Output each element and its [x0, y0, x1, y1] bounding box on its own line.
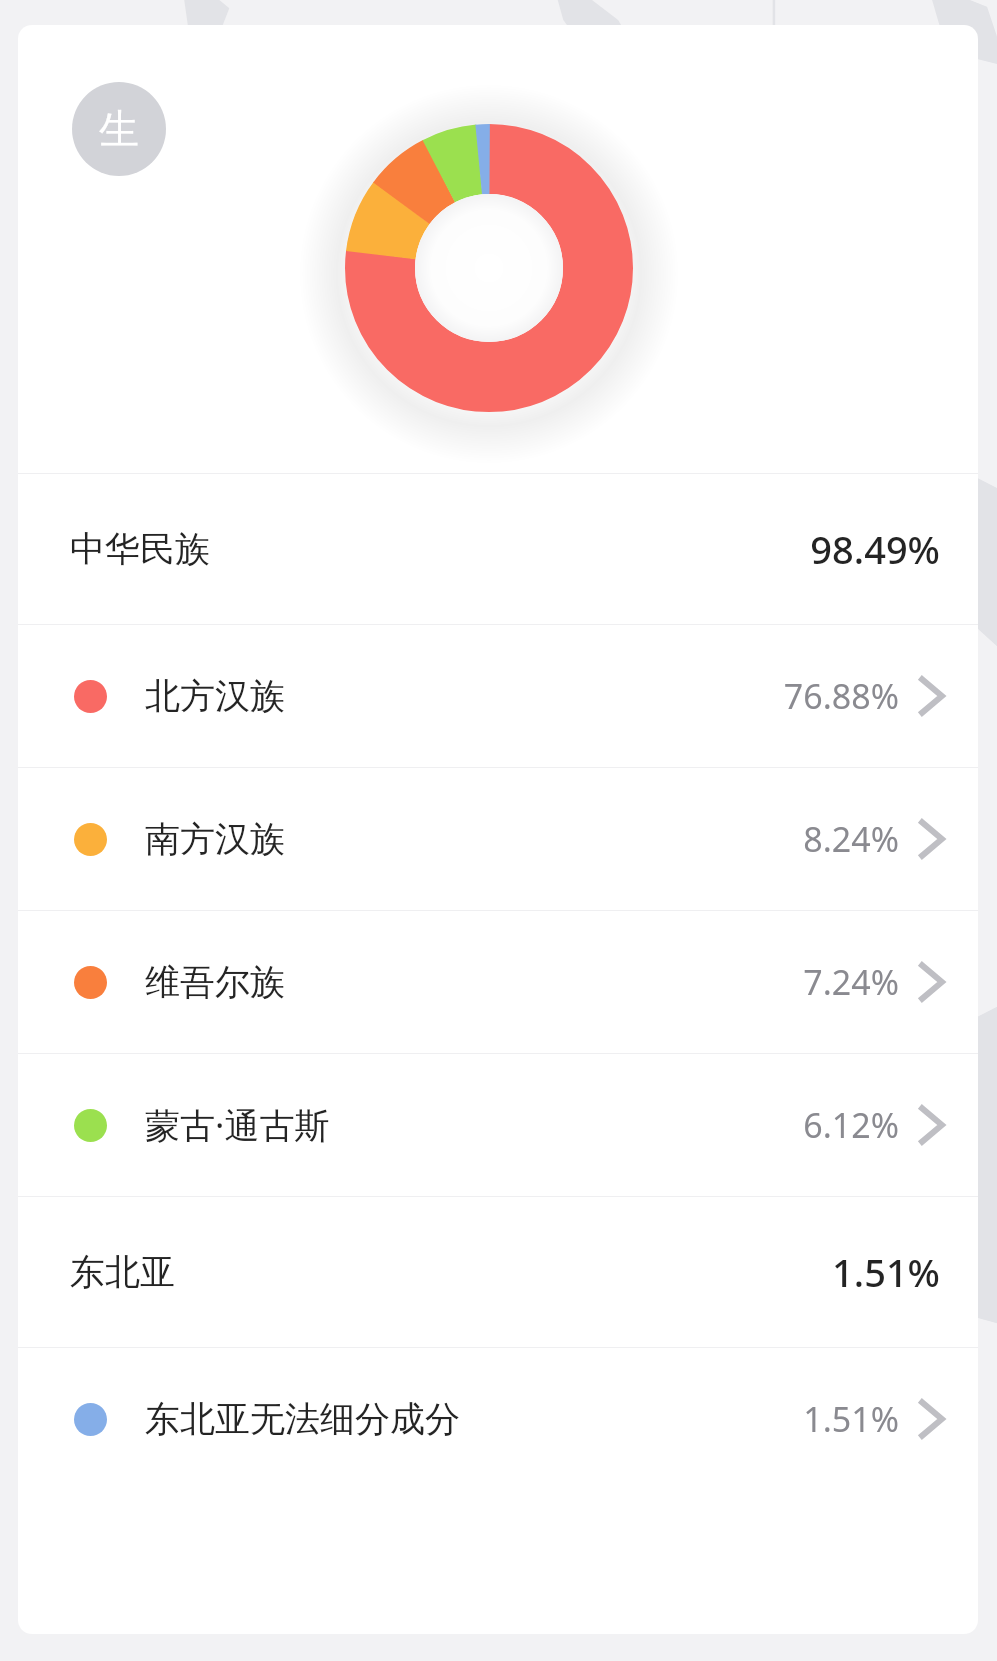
staticText: 6.12%	[803, 1102, 899, 1148]
staticText: 8.24%	[803, 816, 899, 862]
staticText: 7.24%	[803, 959, 899, 1005]
button[interactable]: 蒙古·通古斯	[18, 1054, 978, 1196]
staticText: 蒙古·通古斯	[145, 1101, 330, 1149]
button[interactable]: 中华民族	[18, 474, 978, 624]
button[interactable]: 东北亚无法细分成分	[18, 1348, 978, 1490]
staticText: 76.88%	[783, 673, 899, 719]
button[interactable]: 北方汉族	[18, 625, 978, 767]
staticText: 东北亚无法细分成分	[145, 1397, 460, 1441]
staticText: 东北亚	[70, 1250, 175, 1294]
staticText: 北方汉族	[145, 674, 285, 718]
button[interactable]: 南方汉族	[18, 768, 978, 910]
button[interactable]: 维吾尔族	[18, 911, 978, 1053]
staticText: 98.49%	[810, 523, 940, 575]
button[interactable]: 东北亚	[18, 1197, 978, 1347]
staticText: 生	[99, 104, 139, 154]
staticText: 中华民族	[70, 527, 210, 571]
staticText: 维吾尔族	[145, 960, 285, 1004]
staticText: 1.51%	[832, 1246, 940, 1298]
button[interactable]: Profile	[72, 82, 166, 176]
staticText: 1.51%	[803, 1396, 899, 1442]
staticText: 南方汉族	[145, 817, 285, 861]
